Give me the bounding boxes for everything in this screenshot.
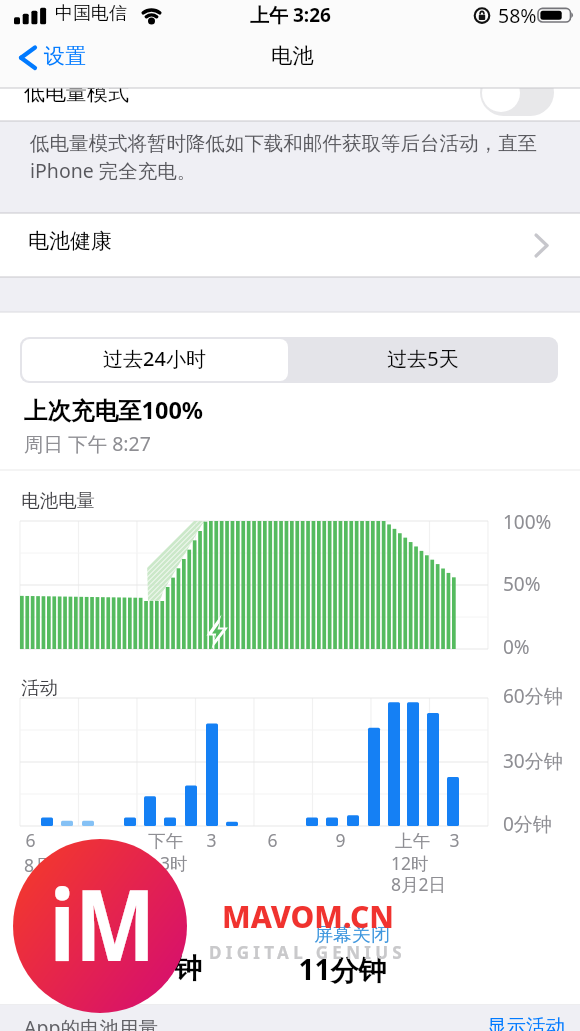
- staticText: 8月2日: [391, 872, 447, 896]
- staticText: 58%: [498, 2, 537, 29]
- staticText: 显示活动: [487, 1014, 565, 1031]
- staticText: DIGITAL GENIUS: [209, 941, 406, 964]
- staticText: 12时: [391, 851, 429, 875]
- staticText: 电池电量: [21, 489, 95, 512]
- staticText: 电池健康: [28, 228, 112, 254]
- staticText: 过去5天: [387, 345, 459, 372]
- staticText: 0%: [503, 634, 530, 660]
- button[interactable]: [0, 213, 580, 277]
- button[interactable]: 显示活动: [480, 1008, 570, 1031]
- staticText: 60分钟: [503, 683, 563, 709]
- staticText: 电池: [271, 42, 314, 69]
- staticText: 9: [335, 828, 346, 852]
- staticText: 屏幕关闭: [314, 923, 390, 947]
- staticText: App的电池用量: [24, 1014, 158, 1031]
- staticText: 3: [449, 828, 460, 852]
- button[interactable]: [0, 88, 580, 121]
- staticText: 3: [206, 828, 217, 852]
- staticText: 分钟: [146, 951, 202, 986]
- staticText: iPhone 完全充电。: [30, 157, 197, 184]
- staticText: 周日 下午 8:27: [24, 430, 151, 457]
- staticText: MAVOM.CN: [222, 896, 394, 937]
- staticText: 低电量模式: [24, 80, 129, 106]
- staticText: 下午: [148, 830, 183, 852]
- staticText: 1日: [24, 874, 52, 898]
- staticText: 活动: [21, 676, 58, 699]
- staticText: 8月: [24, 853, 52, 877]
- staticText: 过去24小时: [103, 345, 206, 372]
- button[interactable]: [22, 339, 288, 381]
- staticText: 上午 3:26: [250, 2, 331, 28]
- staticText: 6: [267, 828, 278, 852]
- staticText: 11分钟: [298, 950, 387, 988]
- staticText: 0分钟: [503, 811, 552, 837]
- staticText: 中国电信: [55, 2, 127, 25]
- staticText: 6: [25, 828, 36, 852]
- staticText: 上次充电至100%: [24, 394, 204, 426]
- button[interactable]: [14, 40, 104, 80]
- button[interactable]: [288, 339, 558, 381]
- staticText: 设置: [44, 43, 86, 69]
- staticText: iM: [49, 855, 155, 990]
- button[interactable]: [480, 69, 554, 116]
- staticText: 3时: [160, 851, 188, 875]
- staticText: 50%: [503, 571, 541, 597]
- staticText: 30分钟: [503, 748, 563, 774]
- staticText: 低电量模式将暂时降低如下载和邮件获取等后台活动，直至: [30, 131, 537, 156]
- staticText: 上午: [395, 830, 430, 852]
- staticText: 100%: [503, 509, 552, 535]
